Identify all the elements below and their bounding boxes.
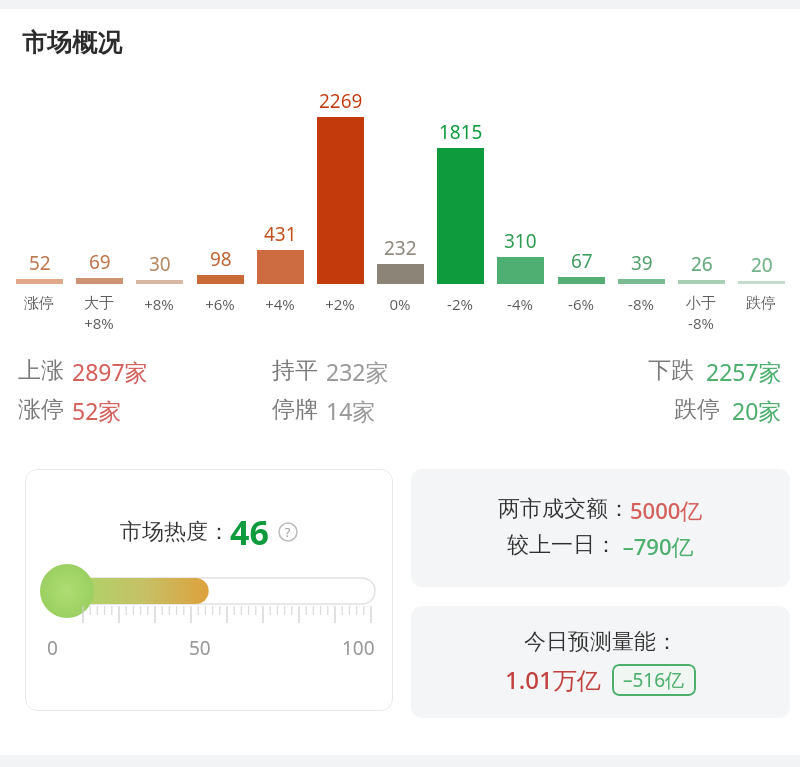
- staticText: 2257家: [706, 356, 782, 387]
- staticText: +4%: [265, 294, 295, 314]
- staticText: 431: [264, 221, 297, 247]
- staticText: 2897家: [72, 356, 148, 387]
- staticText: -8%: [688, 313, 714, 333]
- staticText: 涨停: [24, 294, 54, 313]
- staticText: -2%: [447, 294, 473, 314]
- staticText: 50: [189, 635, 211, 661]
- staticText: 2269: [319, 88, 363, 114]
- staticText: -6%: [568, 294, 594, 314]
- staticText: 52家: [72, 395, 122, 426]
- staticText: 1.01万亿: [505, 663, 601, 696]
- staticText: 跌停: [674, 395, 720, 424]
- staticText: 今日预测量能：: [524, 628, 678, 656]
- staticText: –790亿: [617, 531, 694, 561]
- staticText: 市场热度：: [120, 518, 230, 546]
- staticText: 1815: [439, 119, 483, 145]
- staticText: 0%: [389, 294, 411, 314]
- staticText: 69: [89, 249, 111, 275]
- staticText: 14家: [326, 395, 376, 426]
- staticText: 39: [631, 250, 653, 276]
- staticText: 100: [342, 635, 375, 661]
- staticText: 较上一日：: [507, 531, 617, 559]
- staticText: 持平: [272, 356, 318, 385]
- staticText: -8%: [628, 294, 654, 314]
- staticText: 市场概况: [22, 27, 122, 58]
- staticText: 两市成交额：: [498, 495, 630, 523]
- staticText: +8%: [144, 294, 174, 314]
- staticText: 52: [29, 250, 51, 276]
- staticText: 232: [384, 235, 417, 261]
- staticText: 46: [230, 509, 269, 555]
- button[interactable]: 市场概况: [0, 9, 800, 72]
- staticText: +8%: [84, 313, 114, 333]
- staticText: 跌停: [746, 294, 776, 313]
- staticText: -4%: [507, 294, 533, 314]
- staticText: ?: [285, 524, 291, 540]
- staticText: +6%: [205, 294, 235, 314]
- staticText: 26: [691, 251, 713, 277]
- staticText: 涨停: [18, 395, 64, 424]
- staticText: +2%: [325, 294, 355, 314]
- staticText: 30: [149, 251, 171, 277]
- staticText: 停牌: [272, 395, 318, 424]
- staticText: 310: [504, 228, 537, 254]
- staticText: 0: [47, 635, 58, 661]
- staticText: 67: [571, 248, 593, 274]
- staticText: 下跌: [648, 356, 694, 385]
- button[interactable]: 帮助: [278, 522, 298, 542]
- button[interactable]: 市场热度：: [25, 469, 393, 711]
- button[interactable]: 两市成交额：: [411, 469, 790, 587]
- staticText: 98: [210, 246, 232, 272]
- staticText: 小于: [686, 294, 716, 313]
- staticText: 20: [751, 252, 773, 278]
- button[interactable]: 今日预测量能：: [411, 606, 790, 718]
- staticText: –516亿: [623, 667, 685, 693]
- staticText: 上涨: [18, 356, 64, 385]
- staticText: 大于: [84, 294, 114, 313]
- staticText: 232家: [326, 356, 389, 387]
- staticText: 5000亿: [630, 495, 703, 525]
- staticText: 20家: [732, 395, 782, 426]
